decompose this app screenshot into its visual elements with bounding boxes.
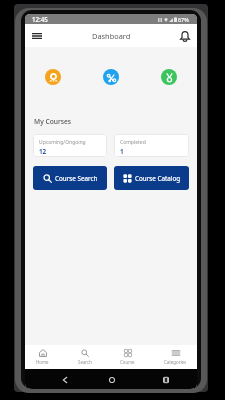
staticText: Course Search <box>55 174 98 183</box>
button[interactable]: Upcoming/Ongoing <box>33 134 107 157</box>
staticText: 1 <box>120 147 124 156</box>
button[interactable]: Back <box>58 373 71 386</box>
button[interactable]: Search <box>78 345 92 369</box>
button[interactable]: Course Catalog <box>114 166 189 190</box>
button[interactable]: Course <box>120 345 135 369</box>
button[interactable]: Medals <box>161 69 177 85</box>
button[interactable]: Achievements <box>45 69 61 85</box>
button[interactable]: Home <box>36 345 49 369</box>
staticText: Home <box>36 359 49 365</box>
staticText: Categories <box>164 359 187 365</box>
staticText: 12:45 <box>32 15 48 23</box>
staticText: Dashboard <box>92 31 131 41</box>
button[interactable]: Recent apps <box>159 373 172 386</box>
button[interactable]: Completed <box>114 134 189 157</box>
staticText: 67% <box>178 16 189 23</box>
button[interactable]: Skills <box>103 69 119 85</box>
button[interactable]: Course Search <box>33 166 107 190</box>
staticText: Course Catalog <box>135 174 181 183</box>
staticText: My Courses <box>34 117 72 126</box>
staticText: Completed <box>120 139 146 146</box>
staticText: Course <box>120 359 135 365</box>
staticText: Search <box>78 359 92 365</box>
staticText: 12 <box>39 147 47 156</box>
button[interactable]: Open navigation menu <box>29 28 45 44</box>
button[interactable]: Categories <box>164 345 187 369</box>
staticText: Upcoming/Ongoing <box>39 139 86 146</box>
button[interactable]: Home <box>105 373 118 386</box>
button[interactable]: Notifications <box>177 28 193 44</box>
